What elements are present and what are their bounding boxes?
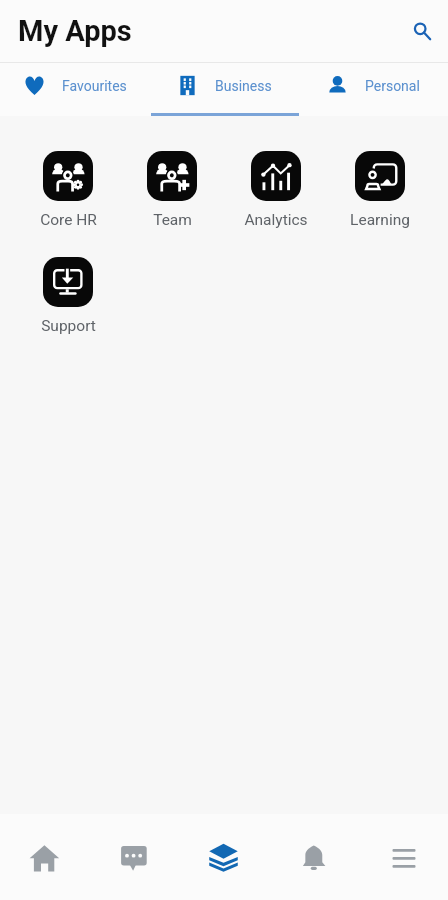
staticText: Learning xyxy=(350,211,410,229)
staticText: Personal xyxy=(365,78,420,94)
button[interactable]: Menu xyxy=(358,814,448,900)
button[interactable]: Apps xyxy=(178,814,268,900)
button[interactable]: Messages xyxy=(89,814,178,900)
staticText: Support xyxy=(41,317,96,335)
button[interactable]: Search xyxy=(400,9,444,53)
button[interactable]: Core HR xyxy=(16,151,120,229)
button[interactable]: Support xyxy=(16,257,120,335)
button[interactable]: Notifications xyxy=(268,814,358,900)
button[interactable]: Learning xyxy=(328,151,432,229)
button[interactable]: Personal xyxy=(299,63,448,116)
staticText: Analytics xyxy=(244,211,308,229)
staticText: Team xyxy=(153,211,192,229)
staticText: Favourites xyxy=(62,78,127,94)
staticText: Business xyxy=(215,78,272,94)
button[interactable]: Business xyxy=(150,63,299,116)
staticText: My Apps xyxy=(18,14,132,48)
button[interactable]: Home xyxy=(0,814,89,900)
button[interactable]: Favourites xyxy=(0,63,150,116)
button[interactable]: Team xyxy=(120,151,224,229)
button[interactable]: Analytics xyxy=(224,151,328,229)
staticText: Core HR xyxy=(40,211,97,229)
